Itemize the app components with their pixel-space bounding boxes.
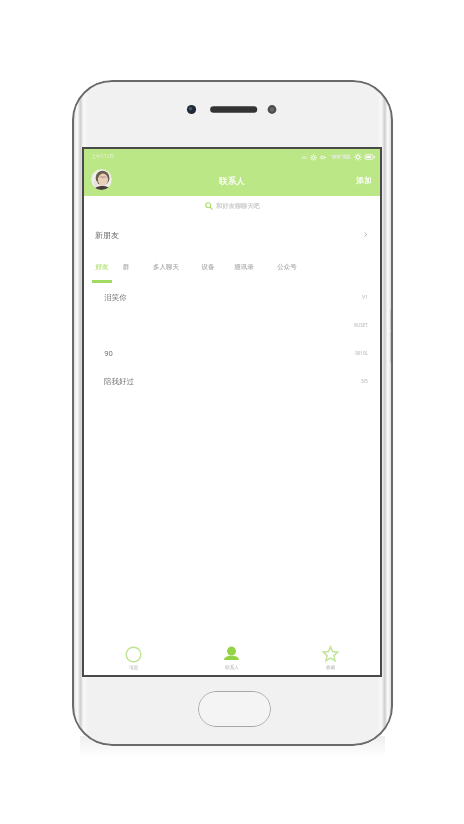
button[interactable]: 设备: [191, 253, 225, 284]
staticText: V1: [362, 294, 368, 300]
staticText: 3/5: [361, 378, 368, 384]
button[interactable]: 添加: [348, 175, 380, 185]
staticText: 多人聊天: [149, 263, 183, 271]
staticText: 新朋友: [95, 230, 119, 240]
button[interactable]: 好友: [85, 253, 119, 284]
staticText: 上午11:05: [91, 153, 114, 160]
button[interactable]: 群: [109, 253, 143, 284]
staticText: 陪我好过: [104, 377, 134, 386]
staticText: 90: [104, 348, 113, 358]
staticText: 4G: [301, 155, 307, 160]
staticText: 公众号: [270, 263, 304, 271]
staticText: 群: [109, 263, 143, 271]
button[interactable]: 收藏: [281, 640, 380, 675]
staticText: 和好友聊聊天吧: [216, 202, 260, 210]
button[interactable]: 新朋友: [84, 216, 380, 253]
staticText: 好友: [85, 263, 119, 271]
staticText: 联系人: [219, 176, 245, 187]
button[interactable]: 联系人: [182, 640, 281, 675]
staticText: 通讯录: [227, 263, 261, 271]
button[interactable]: 通讯录: [227, 253, 261, 284]
button[interactable]: 泪笑你: [84, 283, 380, 311]
button[interactable]: Home: [198, 691, 271, 727]
button[interactable]: 和好友聊聊天吧: [84, 196, 380, 216]
button[interactable]: 公众号: [270, 253, 304, 284]
button[interactable]: 90: [84, 339, 380, 367]
staticText: 泪笑你: [104, 293, 127, 302]
staticText: 消息: [129, 665, 138, 671]
button[interactable]: 消息: [84, 640, 182, 675]
staticText: 设备: [191, 263, 225, 271]
staticText: "微信"消息: [330, 154, 351, 160]
staticText: 联系人: [225, 665, 239, 671]
other: Open new friends: [361, 230, 370, 239]
button[interactable]: 陪我好过: [84, 367, 380, 395]
staticText: 收藏: [326, 665, 335, 671]
button[interactable]: 多人聊天: [149, 253, 183, 284]
button[interactable]: Profile: [91, 169, 112, 190]
staticText: 9010L: [355, 350, 368, 356]
staticText: 8USET: [354, 322, 368, 328]
